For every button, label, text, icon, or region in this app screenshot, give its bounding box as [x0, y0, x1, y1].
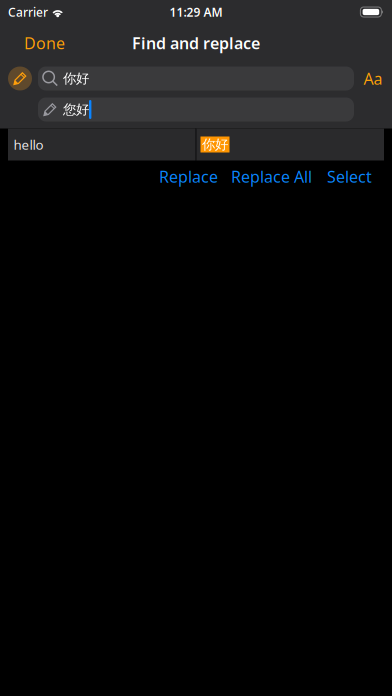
button[interactable]: Aa	[360, 66, 386, 90]
button[interactable]: Select	[319, 161, 380, 192]
staticText: hello	[13, 136, 43, 153]
staticText: Carrier	[8, 4, 48, 20]
staticText: Aa	[363, 68, 382, 89]
staticText: Replace All	[231, 166, 312, 187]
staticText: Done	[24, 32, 65, 54]
button[interactable]: Replace All	[224, 161, 319, 192]
button[interactable]: Find options	[8, 66, 32, 90]
staticText: Find and replace	[132, 32, 260, 54]
staticText: Replace	[159, 166, 218, 187]
button[interactable]: Done	[18, 26, 71, 60]
staticText: 你好	[63, 70, 89, 87]
staticText: 11:29 AM	[169, 4, 222, 20]
staticText: 你好	[202, 136, 228, 153]
staticText: 您好	[63, 101, 89, 118]
button[interactable]: Replace	[153, 161, 224, 192]
staticText: Select	[327, 166, 372, 187]
